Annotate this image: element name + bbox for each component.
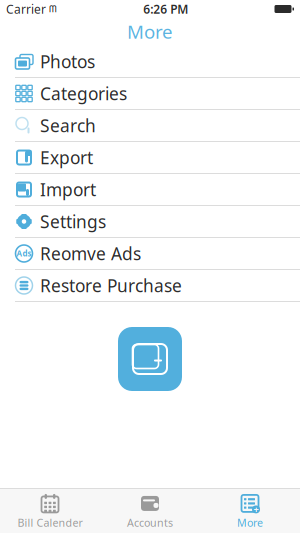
button[interactable]: Bill Calender (0, 488, 100, 533)
staticText: Reomve Ads (40, 242, 141, 265)
button[interactable]: Photos (0, 46, 300, 78)
staticText: More (127, 19, 173, 44)
button[interactable]: Settings (0, 206, 300, 238)
button[interactable]: + (200, 488, 300, 533)
staticText: More (237, 515, 263, 530)
button[interactable]: Accounts (100, 488, 200, 533)
staticText: Export (40, 146, 93, 169)
button[interactable]: Restore Purchase (0, 270, 300, 302)
staticText: Bill Calender (17, 515, 82, 530)
staticText: Import (40, 178, 96, 201)
staticText: 6:26 PM (143, 1, 188, 17)
button[interactable]: Import (0, 174, 300, 206)
staticText: Settings (40, 210, 106, 233)
staticText: Restore Purchase (40, 274, 182, 297)
button[interactable]: Search (0, 110, 300, 142)
staticText: Photos (40, 50, 95, 73)
staticText: Accounts (127, 515, 173, 530)
staticText: Ads (16, 248, 31, 259)
button[interactable]: Ads (0, 238, 300, 270)
staticText: ᗰ (46, 4, 57, 14)
button[interactable]: Export (0, 142, 300, 174)
staticText: Carrier (6, 1, 46, 17)
staticText: Categories (40, 82, 127, 105)
button[interactable]: Categories (0, 78, 300, 110)
staticText: + (253, 503, 258, 516)
staticText: Search (40, 114, 96, 137)
